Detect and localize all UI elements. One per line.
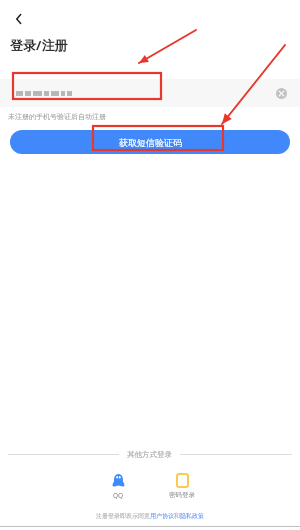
button[interactable]: 隐私政策	[180, 512, 204, 520]
button[interactable]: Clear	[0, 79, 300, 107]
button[interactable]: QQ	[92, 473, 144, 500]
staticText: 密码登录	[169, 491, 195, 499]
staticText: 未注册的手机号验证后自动注册	[8, 112, 106, 121]
staticText: 获取短信验证码	[119, 137, 182, 148]
staticText: 登录/注册	[10, 36, 68, 54]
button[interactable]: 用户协议	[150, 512, 174, 520]
staticText: QQ	[113, 491, 124, 500]
staticText: 其他方式登录	[127, 450, 172, 459]
staticText: 用户协议	[150, 512, 174, 520]
button[interactable]: 密码登录	[156, 473, 208, 499]
staticText: 注册登录即表示同意	[96, 512, 150, 520]
button[interactable]: Back	[6, 6, 32, 32]
button[interactable]: 获取短信验证码	[10, 130, 290, 154]
staticText: 隐私政策	[180, 512, 204, 520]
button[interactable]: Clear	[272, 84, 290, 102]
staticText: 和	[174, 512, 180, 520]
